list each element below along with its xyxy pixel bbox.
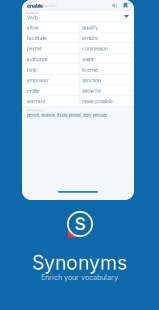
staticText: Antonyms: [27, 108, 44, 112]
staticText: permit [27, 46, 41, 52]
staticText: commission [82, 46, 108, 52]
staticText: Synonyms [32, 251, 127, 274]
button[interactable]: Pronounce [110, 0, 119, 11]
button[interactable]: permit [22, 43, 134, 54]
staticText: sanction [82, 78, 101, 83]
staticText: qualify [82, 25, 98, 31]
button[interactable]: allow [22, 22, 134, 33]
button[interactable]: Verb [22, 11, 134, 22]
staticText: help [27, 67, 37, 73]
staticText: Enrich your vocabulary [41, 273, 118, 282]
button[interactable]: authorize [22, 54, 134, 64]
staticText: S [74, 214, 85, 235]
button[interactable]: warrant [22, 96, 134, 106]
staticText: prevent, disallow, forbid, prohibit, den… [27, 113, 107, 118]
staticText: assist [82, 57, 93, 62]
staticText: allow for [82, 88, 102, 94]
button[interactable]: empower [22, 75, 134, 85]
staticText: enable [27, 3, 43, 9]
button[interactable]: Bookmark [121, 0, 130, 11]
staticText: make possible [82, 99, 113, 104]
button[interactable]: help [22, 64, 134, 75]
staticText: ensure [82, 36, 98, 41]
staticText: entitle [27, 88, 40, 94]
staticText: license [82, 67, 98, 73]
staticText: warrant [27, 99, 45, 104]
staticText: allow [27, 25, 39, 31]
staticText: empower [27, 78, 49, 83]
staticText: Verb [27, 15, 38, 20]
button[interactable]: facilitate [22, 33, 134, 43]
staticText: /ɪˈneɪb(ə)l/ [40, 4, 56, 8]
staticText: facilitate [27, 36, 47, 41]
staticText: authorize [27, 57, 48, 62]
button[interactable]: entitle [22, 85, 134, 96]
